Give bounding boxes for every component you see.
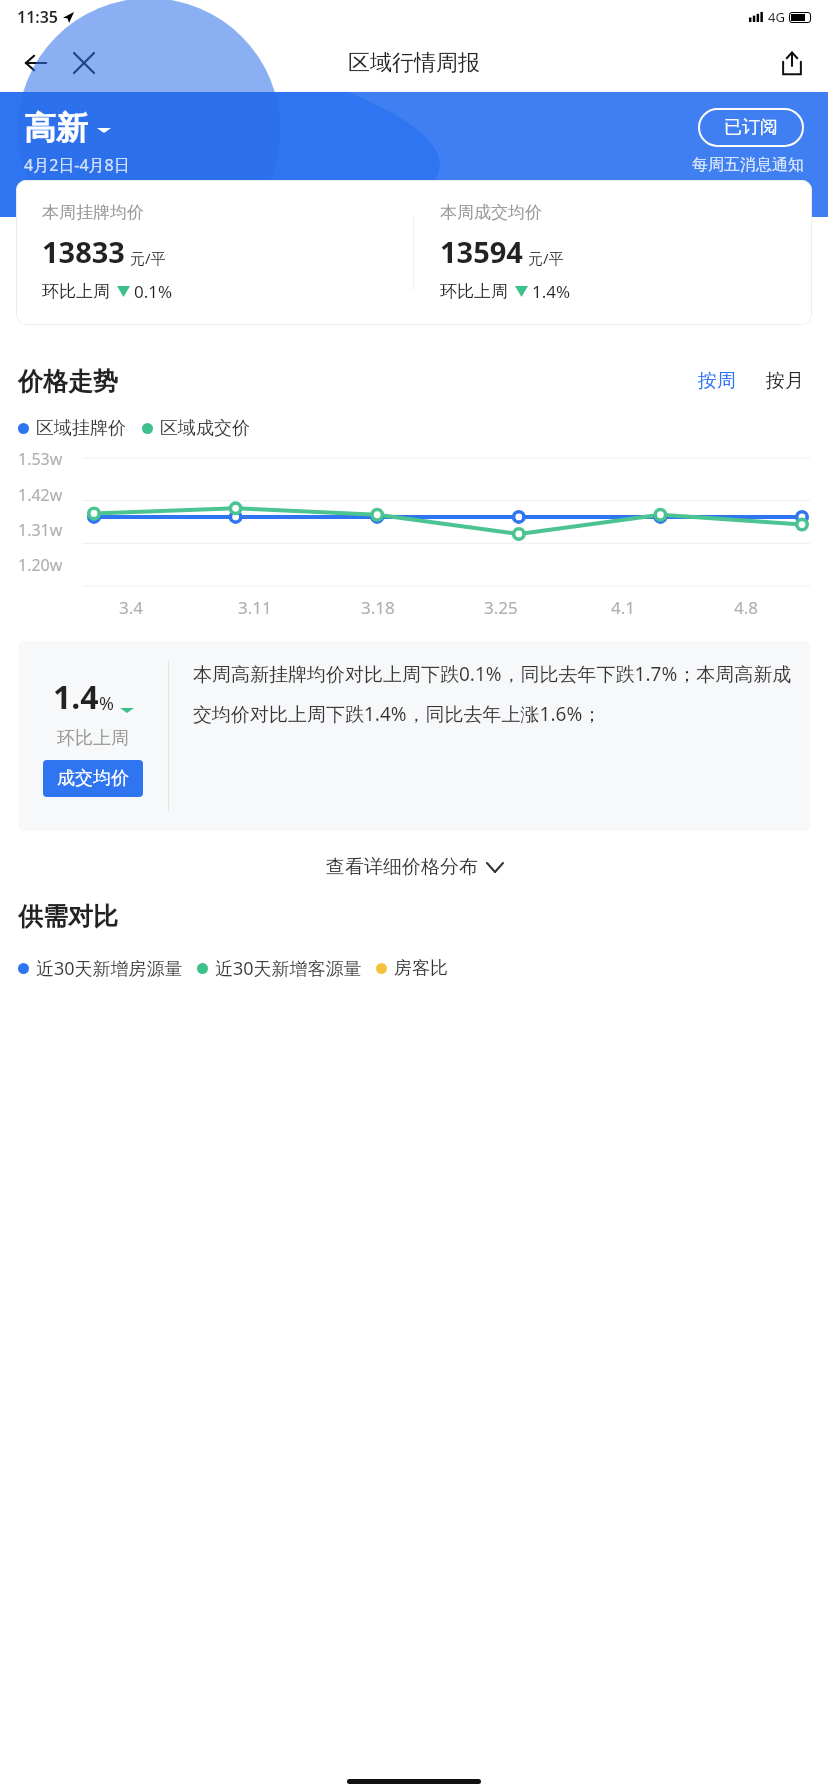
button[interactable]: Close <box>62 41 106 85</box>
staticText: 价格走势 <box>18 366 692 397</box>
staticText: 0.1% <box>134 280 173 303</box>
staticText: 本周成交均价 <box>440 202 542 223</box>
button[interactable]: 高新 <box>24 108 111 148</box>
staticText: 11:35 <box>17 6 59 28</box>
staticText: 本周高新挂牌均价对比上周下跌0.1%，同比去年下跌1.7%；本周高新成交均价对比… <box>193 661 792 726</box>
staticText: 区域成交价 <box>160 417 250 440</box>
staticText: 1.53w <box>18 448 63 470</box>
staticText: 按月 <box>766 369 804 393</box>
button[interactable]: 查看详细价格分布 <box>18 855 810 879</box>
staticText: 环比上周 <box>440 281 508 302</box>
staticText: 环比上周 <box>57 727 129 750</box>
staticText: 近30天新增客源量 <box>215 956 362 981</box>
staticText: 13833 <box>42 232 125 271</box>
staticText: 4月2日-4月8日 <box>24 154 130 176</box>
staticText: 1.31w <box>18 519 63 541</box>
staticText: 3.25 <box>484 596 518 619</box>
staticText: 元/平 <box>528 248 564 268</box>
button[interactable]: 按周 <box>692 365 742 397</box>
staticText: 环比上周 <box>42 281 110 302</box>
staticText: 3.4 <box>119 596 144 619</box>
button[interactable]: Share <box>770 41 814 85</box>
staticText: 按周 <box>698 369 736 393</box>
staticText: 本周挂牌均价 <box>42 202 144 223</box>
staticText: 1.42w <box>18 484 63 506</box>
staticText: 已订阅 <box>724 116 778 139</box>
staticText: 元/平 <box>130 248 166 268</box>
button[interactable]: Back <box>14 41 58 85</box>
staticText: 每周五消息通知 <box>692 155 804 175</box>
button[interactable]: 成交均价 <box>43 760 143 797</box>
staticText: % <box>99 691 114 716</box>
staticText: 4.8 <box>734 596 759 619</box>
staticText: 1.20w <box>18 554 63 576</box>
staticText: 1.4% <box>532 280 571 303</box>
staticText: 3.11 <box>238 596 272 619</box>
staticText: 13594 <box>440 232 523 271</box>
staticText: 4.1 <box>611 596 636 619</box>
staticText: 1.4 <box>53 675 99 719</box>
staticText: 3.18 <box>361 596 395 619</box>
staticText: 供需对比 <box>18 901 118 932</box>
staticText: 高新 <box>24 108 88 148</box>
staticText: 4G <box>768 8 785 26</box>
staticText: 成交均价 <box>57 767 129 790</box>
staticText: 区域挂牌价 <box>36 417 126 440</box>
staticText: 房客比 <box>394 957 448 980</box>
button[interactable]: 按月 <box>760 365 810 397</box>
staticText: 近30天新增房源量 <box>36 956 183 981</box>
staticText: 区域行情周报 <box>348 49 480 77</box>
staticText: 查看详细价格分布 <box>326 855 478 879</box>
button[interactable]: 已订阅 <box>698 108 804 147</box>
